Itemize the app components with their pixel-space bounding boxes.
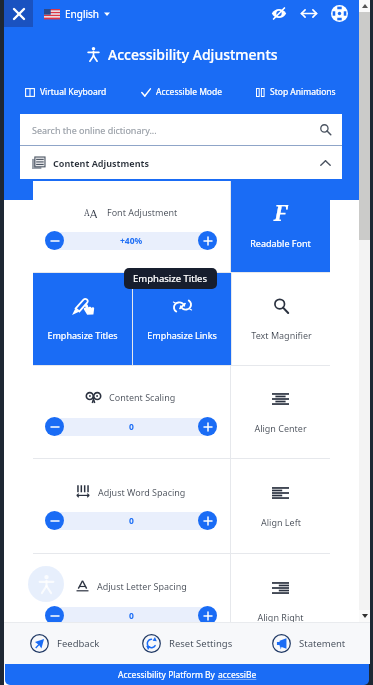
staticText: accessiBe xyxy=(218,669,257,681)
button[interactable]: Hide interface xyxy=(264,0,294,27)
button[interactable]: Close accessibility widget xyxy=(4,0,33,27)
button[interactable]: Decrease Font Adjustment xyxy=(45,231,64,250)
staticText: Align Left xyxy=(261,516,301,528)
staticText: Text Magnifier xyxy=(251,329,312,341)
button[interactable]: Emphasize Links xyxy=(133,273,231,365)
staticText: F xyxy=(274,199,288,228)
button[interactable]: Reset Settings xyxy=(126,623,248,664)
button[interactable]: Decrease Content Scaling xyxy=(45,417,64,436)
button[interactable]: F xyxy=(231,181,330,272)
button[interactable]: Text Magnifier xyxy=(232,273,330,365)
staticText: +40% xyxy=(120,235,143,247)
button[interactable]: Open accessibility menu xyxy=(28,566,64,602)
staticText: Font Adjustment xyxy=(107,206,178,218)
button[interactable]: Increase Content Scaling xyxy=(198,417,217,436)
button[interactable]: Feedback xyxy=(4,623,126,664)
button[interactable]: Accessibility Platform By xyxy=(5,664,369,685)
staticText: Content Adjustments xyxy=(53,157,149,169)
staticText: A xyxy=(89,205,99,218)
button[interactable]: Emphasize Titles xyxy=(33,273,132,365)
staticText: A xyxy=(84,207,90,218)
button[interactable]: Decrease Adjust Word Spacing xyxy=(45,511,64,530)
staticText: Accessibility Platform By xyxy=(118,669,218,681)
staticText: Emphasize Titles xyxy=(133,272,208,285)
staticText: Search the online dictionary... xyxy=(32,124,157,136)
button[interactable]: Increase Adjust Letter Spacing xyxy=(198,606,217,625)
button[interactable]: Statement xyxy=(248,623,370,664)
button[interactable]: Increase Adjust Word Spacing xyxy=(198,511,217,530)
button[interactable]: Accessible Mode xyxy=(139,83,225,101)
staticText: Align Right xyxy=(257,611,304,623)
button[interactable]: Increase Font Adjustment xyxy=(198,231,217,250)
button[interactable]: Search the online dictionary... xyxy=(20,114,342,145)
staticText: Adjust Letter Spacing xyxy=(97,580,187,592)
button[interactable]: Align Center xyxy=(231,366,330,458)
staticText: Emphasize Titles xyxy=(47,329,118,341)
staticText: Readable Font xyxy=(250,237,311,249)
staticText: Adjust Word Spacing xyxy=(98,486,186,498)
staticText: Emphasize Links xyxy=(147,329,217,341)
button[interactable]: Resize widget xyxy=(294,0,324,27)
staticText: Stop Animations xyxy=(270,86,336,98)
staticText: English xyxy=(65,7,100,21)
staticText: Statement xyxy=(299,637,346,650)
button[interactable]: Stop Animations xyxy=(254,83,338,101)
button[interactable]: Move widget xyxy=(324,0,354,27)
button[interactable]: Align Left xyxy=(231,459,330,553)
staticText: Feedback xyxy=(57,637,100,650)
staticText: 0 xyxy=(129,515,134,527)
staticText: Accessible Mode xyxy=(156,86,223,98)
staticText: Virtual Keyboard xyxy=(40,86,107,98)
staticText: Reset Settings xyxy=(169,637,233,650)
staticText: Align Center xyxy=(254,422,307,434)
staticText: Content Scaling xyxy=(109,391,176,403)
button[interactable]: English xyxy=(44,4,110,24)
button[interactable]: Align Right xyxy=(231,554,330,648)
staticText: Accessibility Adjustments xyxy=(108,45,278,64)
staticText: 0 xyxy=(129,421,134,433)
button[interactable]: Content Adjustments xyxy=(20,146,342,179)
staticText: 0 xyxy=(129,610,134,622)
button[interactable]: Decrease Adjust Letter Spacing xyxy=(45,606,64,625)
button[interactable]: Virtual Keyboard xyxy=(23,83,109,101)
